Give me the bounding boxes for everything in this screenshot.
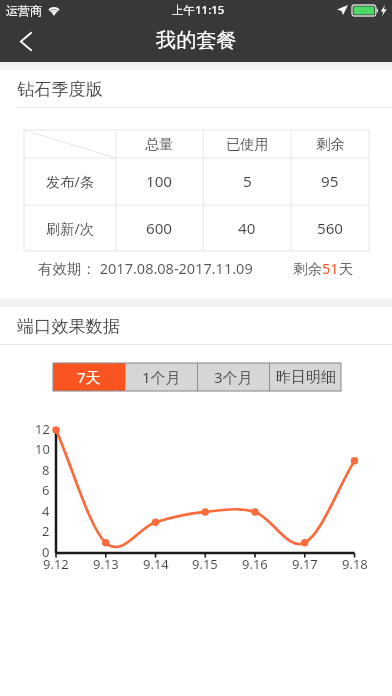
button[interactable]: 7天 [53,363,125,391]
staticText: 560 [317,218,344,239]
staticText: 9.14 [143,555,169,573]
staticText: 6 [42,481,50,499]
staticText: 9.12 [43,555,69,573]
staticText: 我的套餐 [156,28,237,53]
button[interactable]: 昨日明细 [270,363,341,391]
staticText: 7天 [77,367,101,387]
button[interactable]: Back [0,20,52,62]
staticText: 100 [146,171,173,192]
staticText: 上午11:15 [172,2,225,18]
staticText: 2 [42,522,50,540]
staticText: 刷新/次 [46,219,94,238]
staticText: 剩余51天 [293,258,354,278]
staticText: 端口效果数据 [17,315,121,337]
staticText: 0 [42,543,50,561]
staticText: 3个月 [214,367,253,387]
staticText: 1个月 [142,367,181,387]
button[interactable]: 3个月 [198,363,269,391]
staticText: 昨日明细 [276,368,336,387]
staticText: 钻石季度版 [17,78,103,100]
staticText: 发布/条 [46,172,94,191]
staticText: 9.13 [93,555,119,573]
staticText: 40 [238,218,256,239]
staticText: 5 [243,171,252,192]
staticText: 9.17 [292,555,318,573]
staticText: 已使用 [226,135,269,153]
staticText: 9.16 [242,555,268,573]
button[interactable]: 1个月 [126,363,197,391]
staticText: 600 [146,218,173,239]
staticText: 12 [35,420,50,438]
staticText: 9.15 [192,555,218,573]
staticText: 8 [42,461,50,479]
staticText: 剩余 [316,135,345,153]
staticText: 9.18 [342,555,368,573]
staticText: 运营商 [6,3,42,18]
staticText: 4 [42,502,50,520]
staticText: 有效期： 2017.08.08-2017.11.09 [38,258,253,278]
staticText: 10 [35,440,50,458]
staticText: 总量 [145,135,174,153]
staticText: 95 [321,171,339,192]
